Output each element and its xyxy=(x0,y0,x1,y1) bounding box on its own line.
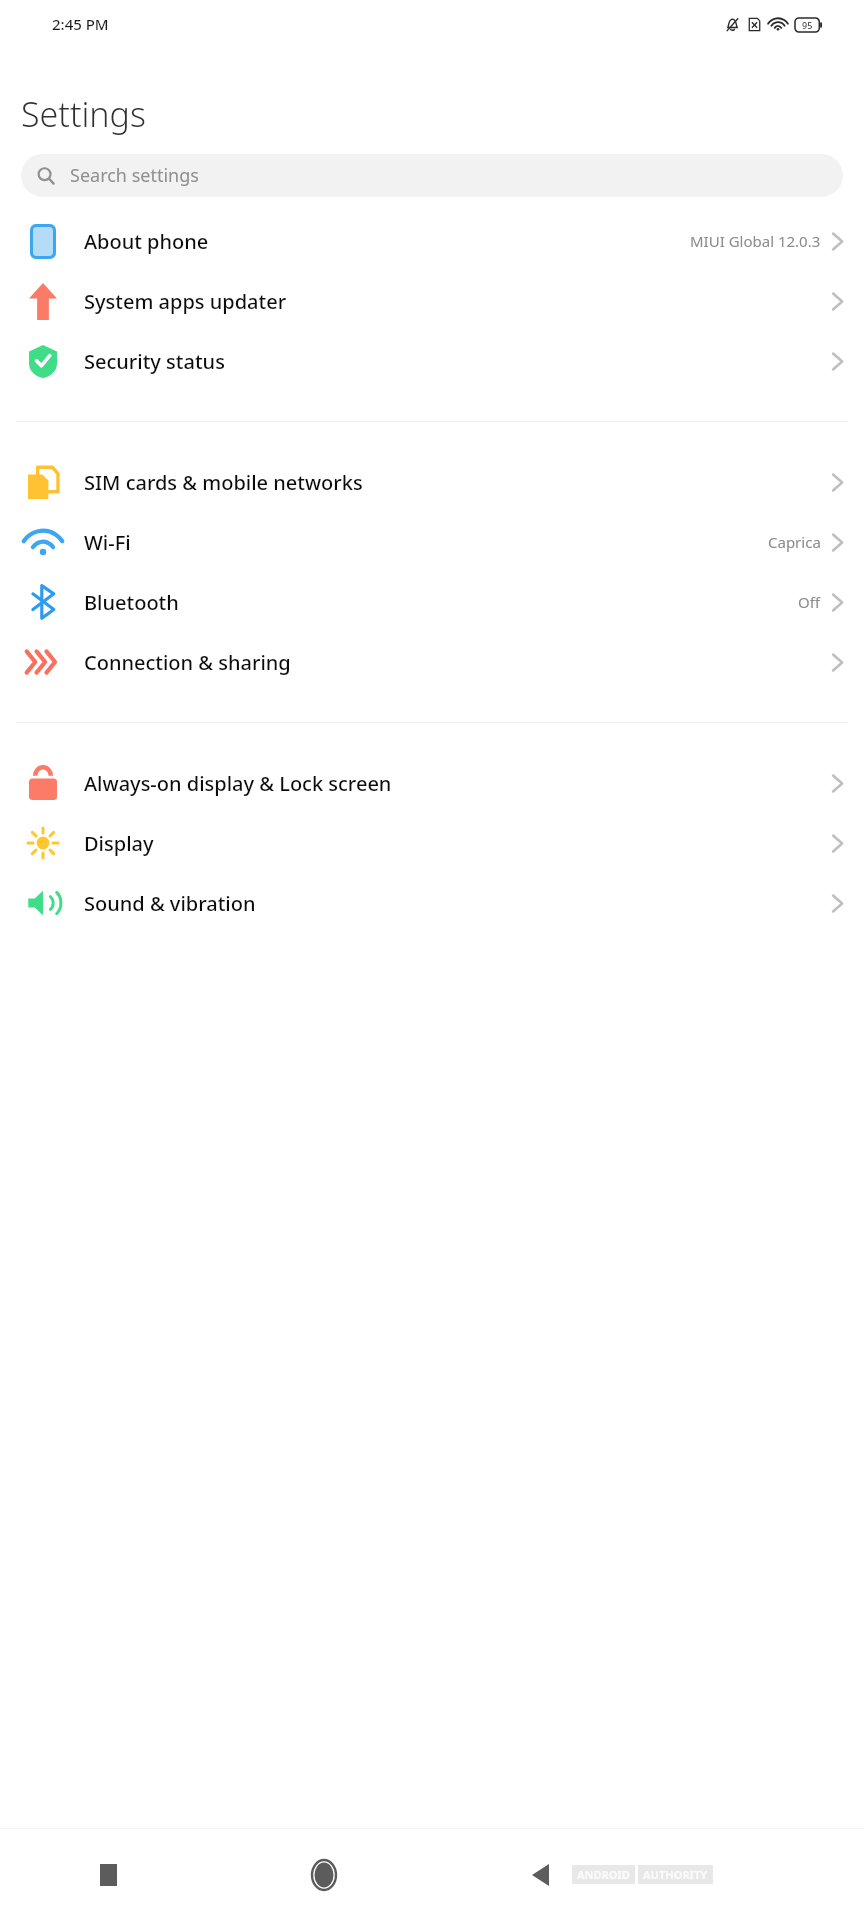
button[interactable]: Always-on display & Lock screen xyxy=(0,753,864,813)
button[interactable]: System apps updater xyxy=(0,271,864,331)
button[interactable]: Security status xyxy=(0,331,864,391)
staticText: About phone xyxy=(84,228,209,255)
staticText: Always-on display & Lock screen xyxy=(84,770,392,797)
other: Open Connection & sharing xyxy=(832,653,843,672)
button[interactable]: Sound & vibration xyxy=(0,873,864,933)
button[interactable]: About phone xyxy=(0,211,864,271)
staticText: Caprica xyxy=(768,532,821,552)
other: Open System apps updater xyxy=(832,292,843,311)
staticText: Sound & vibration xyxy=(84,890,256,917)
staticText: Security status xyxy=(84,348,225,375)
other: Open Bluetooth xyxy=(832,593,843,612)
button[interactable]: Bluetooth xyxy=(0,572,864,632)
other: Open Sound & vibration xyxy=(832,894,843,913)
staticText: ANDROID xyxy=(577,1867,630,1882)
button[interactable]: Display xyxy=(0,813,864,873)
staticText: Wi-Fi xyxy=(84,529,131,556)
button[interactable]: Wi-Fi xyxy=(0,512,864,572)
staticText: 2:45 PM xyxy=(52,14,109,34)
button[interactable]: Recents xyxy=(0,1829,216,1920)
other: Open Wi-Fi xyxy=(832,533,843,552)
button[interactable]: Back xyxy=(432,1829,648,1920)
button[interactable]: Connection & sharing xyxy=(0,632,864,692)
staticText: System apps updater xyxy=(84,288,287,315)
staticText: Bluetooth xyxy=(84,589,179,616)
staticText: Off xyxy=(798,592,821,612)
staticText: Settings xyxy=(21,91,146,137)
other: Open Display xyxy=(832,834,843,853)
staticText: Display xyxy=(84,830,154,857)
other: Open About phone xyxy=(832,232,843,251)
button[interactable]: Home xyxy=(216,1829,432,1920)
other: Open SIM cards & mobile networks xyxy=(832,473,843,492)
button[interactable]: SIM cards & mobile networks xyxy=(0,452,864,512)
staticText: Search settings xyxy=(70,163,199,188)
staticText: SIM cards & mobile networks xyxy=(84,469,363,496)
other: Open Security status xyxy=(832,352,843,371)
staticText: AUTHORITY xyxy=(643,1867,708,1882)
staticText: Connection & sharing xyxy=(84,649,291,676)
button[interactable]: Search settings xyxy=(21,154,843,197)
other: Open Always-on display & Lock screen xyxy=(832,774,843,793)
staticText: 95 xyxy=(802,19,813,31)
staticText: MIUI Global 12.0.3 xyxy=(690,231,821,251)
